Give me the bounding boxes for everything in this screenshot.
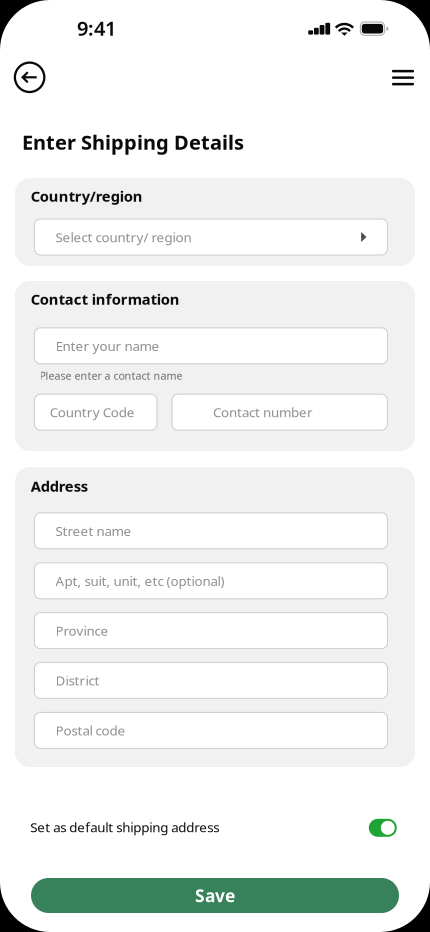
staticText: Address (31, 476, 88, 496)
button[interactable]: Menu (392, 70, 414, 85)
button[interactable]: Province (34, 613, 387, 649)
staticText: Select country/ region (55, 228, 191, 246)
staticText: Enter Shipping Details (22, 129, 244, 155)
staticText: Save (195, 884, 235, 907)
button[interactable]: Country Code (34, 394, 157, 430)
staticText: Contact information (31, 289, 180, 309)
button[interactable]: Postal code (34, 712, 387, 748)
button[interactable]: Save (31, 878, 399, 913)
staticText: District (55, 671, 99, 689)
button[interactable]: Set as default shipping address (369, 819, 397, 837)
button[interactable]: District (34, 662, 387, 698)
staticText: Postal code (55, 721, 125, 739)
staticText: Country/region (31, 186, 143, 206)
staticText: Enter your name (55, 337, 159, 355)
staticText: Province (55, 622, 108, 639)
staticText: Contact number (213, 403, 313, 421)
staticText: Set as default shipping address (30, 818, 219, 836)
button[interactable]: Back (13, 60, 47, 94)
button[interactable]: Contact number (172, 394, 387, 430)
staticText: Apt, suit, unit, etc (optional) (55, 572, 224, 590)
staticText: Country Code (50, 403, 135, 421)
button[interactable]: Enter your name (34, 328, 387, 364)
button[interactable]: Street name (34, 513, 387, 549)
button[interactable]: Select country/ region (34, 219, 387, 255)
staticText: Street name (55, 522, 131, 540)
staticText: Please enter a contact name (39, 368, 182, 383)
button[interactable]: Apt, suit, unit, etc (optional) (34, 563, 387, 599)
staticText: 9:41 (77, 15, 116, 41)
